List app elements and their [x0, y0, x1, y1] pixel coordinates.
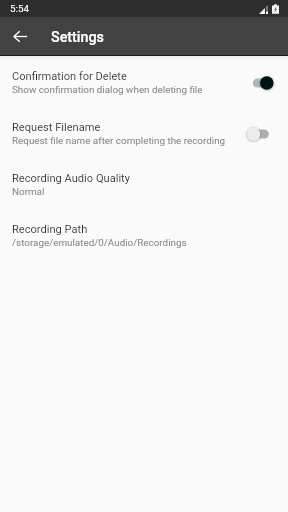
staticText: Recording Audio Quality	[12, 172, 130, 185]
staticText: Confirmation for Delete	[12, 70, 127, 83]
button[interactable]: Confirmation for Delete toggle	[247, 75, 274, 91]
button[interactable]: Request Filename	[0, 108, 288, 159]
button[interactable]: Recording Path	[0, 210, 288, 261]
staticText: Recording Path	[12, 223, 88, 236]
staticText: Settings	[51, 29, 104, 46]
button[interactable]: Back	[6, 22, 34, 50]
staticText: 5:54	[10, 3, 29, 14]
staticText: Request Filename	[12, 121, 101, 134]
button[interactable]: Recording Audio Quality	[0, 159, 288, 210]
staticText: Normal	[12, 186, 45, 198]
button[interactable]: Request Filename toggle	[247, 126, 274, 142]
staticText: /storage/emulated/0/Audio/Recordings	[12, 237, 187, 249]
staticText: Show confirmation dialog when deleting f…	[12, 84, 203, 96]
staticText: Request file name after completing the r…	[12, 135, 226, 147]
button[interactable]: Confirmation for Delete	[0, 57, 288, 108]
